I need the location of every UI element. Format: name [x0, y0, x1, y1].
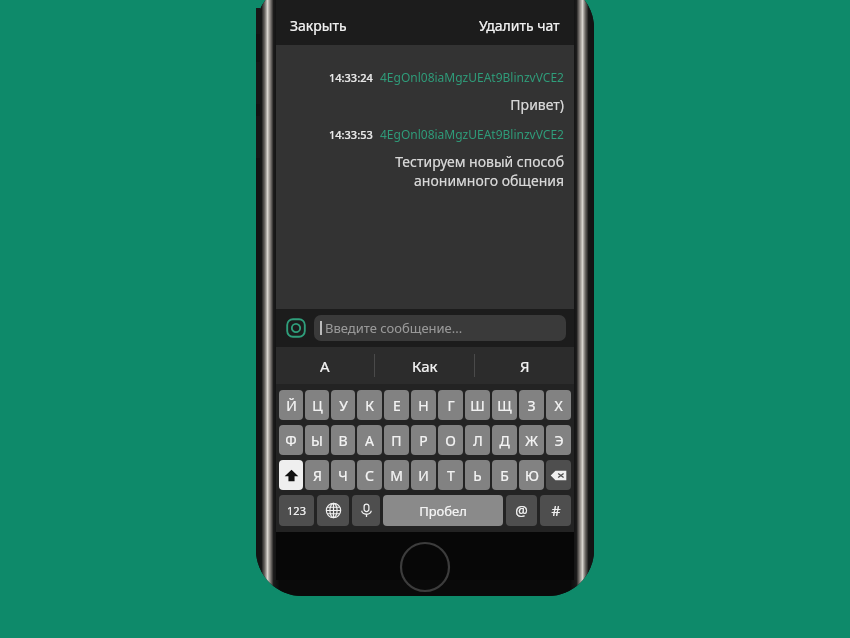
staticText: Д [499, 431, 510, 450]
button[interactable]: П [384, 425, 409, 455]
staticText: Ш [470, 396, 485, 415]
button[interactable]: Ч [331, 460, 355, 490]
button[interactable]: Х [546, 390, 571, 420]
staticText: 4EgOnl08iaMgzUEAt9BlinzvVCE2 [380, 69, 564, 85]
staticText: Введите сообщение... [325, 319, 463, 337]
staticText: 14:33:53 [329, 127, 373, 142]
button[interactable]: Ц [305, 390, 329, 420]
button[interactable]: Г [438, 390, 463, 420]
button[interactable]: # [540, 495, 571, 526]
button[interactable]: Й [279, 390, 303, 420]
staticText: Ь [473, 466, 482, 485]
staticText: В [338, 431, 348, 450]
staticText: А [365, 431, 374, 450]
button[interactable]: Ю [519, 460, 544, 490]
button[interactable]: Д [492, 425, 517, 455]
button[interactable]: Щ [492, 390, 517, 420]
button[interactable]: Voice input [352, 495, 380, 526]
button[interactable]: Ш [465, 390, 490, 420]
staticText: 123 [287, 503, 306, 518]
button[interactable]: @ [506, 495, 537, 526]
button[interactable]: О [438, 425, 463, 455]
staticText: Щ [497, 396, 512, 415]
staticText: Как [412, 356, 438, 376]
staticText: Пробел [419, 502, 467, 520]
staticText: Е [393, 396, 401, 415]
staticText: Закрыть [290, 16, 347, 35]
staticText: Привет) [510, 95, 564, 114]
button[interactable]: Введите сообщение... [314, 315, 566, 341]
staticText: Э [554, 431, 564, 450]
button[interactable]: З [519, 390, 544, 420]
staticText: Б [500, 466, 509, 485]
button[interactable]: Я [475, 347, 574, 384]
button[interactable]: Change keyboard [317, 495, 349, 526]
button[interactable]: Как [375, 347, 474, 384]
staticText: М [390, 466, 403, 485]
button[interactable]: С [357, 460, 382, 490]
staticText: Т [447, 466, 455, 485]
staticText: 4EgOnl08iaMgzUEAt9BlinzvVCE2 [380, 126, 564, 142]
staticText: И [418, 466, 429, 485]
staticText: Й [286, 396, 297, 415]
button[interactable]: Пробел [383, 495, 503, 526]
staticText: 14:33:24 [329, 70, 373, 85]
button[interactable]: Закрыть [276, 16, 347, 45]
staticText: Ч [338, 466, 348, 485]
staticText: Ф [285, 431, 297, 450]
button[interactable]: Р [411, 425, 436, 455]
staticText: А [320, 356, 330, 376]
button[interactable]: Ф [279, 425, 303, 455]
staticText: @ [515, 501, 528, 520]
staticText: Ю [525, 466, 539, 485]
button[interactable]: И [411, 460, 436, 490]
button[interactable]: Б [492, 460, 517, 490]
staticText: Н [418, 396, 429, 415]
button[interactable]: Т [438, 460, 463, 490]
button[interactable]: А [276, 347, 374, 384]
button[interactable]: Ь [465, 460, 490, 490]
button[interactable]: 123 [279, 495, 314, 526]
button[interactable]: Э [546, 425, 571, 455]
button[interactable]: В [331, 425, 355, 455]
button[interactable]: М [384, 460, 409, 490]
button[interactable]: У [331, 390, 355, 420]
staticText: Ы [311, 431, 323, 450]
button[interactable]: Удалить чат [479, 16, 574, 45]
staticText: З [527, 396, 536, 415]
staticText: С [365, 466, 374, 485]
staticText: У [339, 396, 348, 415]
staticText: Я [520, 356, 530, 376]
button[interactable]: Ы [305, 425, 329, 455]
staticText: Г [447, 396, 455, 415]
staticText: Удалить чат [479, 16, 560, 35]
button[interactable]: К [357, 390, 382, 420]
staticText: Л [473, 431, 483, 450]
button[interactable]: Shift [279, 460, 303, 490]
staticText: Я [313, 466, 322, 485]
button[interactable]: Ж [519, 425, 544, 455]
button[interactable]: Н [411, 390, 436, 420]
button[interactable]: Я [305, 460, 329, 490]
staticText: Тестируем новый способ анонимного общени… [395, 152, 564, 190]
button[interactable]: Е [384, 390, 409, 420]
staticText: Р [419, 431, 428, 450]
staticText: Ж [525, 431, 538, 450]
staticText: Ц [312, 396, 323, 415]
staticText: К [365, 396, 374, 415]
staticText: О [445, 431, 456, 450]
button[interactable]: Attach photo [284, 316, 308, 340]
button[interactable]: Л [465, 425, 490, 455]
button[interactable]: Backspace [546, 460, 571, 490]
staticText: П [391, 431, 402, 450]
button[interactable]: А [357, 425, 382, 455]
staticText: # [551, 501, 561, 520]
staticText: Х [554, 396, 563, 415]
